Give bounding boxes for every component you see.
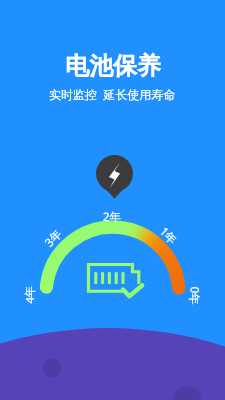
staticText: 3年	[41, 226, 66, 250]
staticText: 4年	[21, 284, 37, 303]
staticText: 1年	[156, 224, 181, 248]
staticText: 2年	[103, 209, 122, 225]
staticText: 0年	[186, 286, 203, 306]
staticText: 实时监控 延长使用寿命	[49, 86, 176, 102]
staticText: 电池保养	[65, 51, 161, 81]
